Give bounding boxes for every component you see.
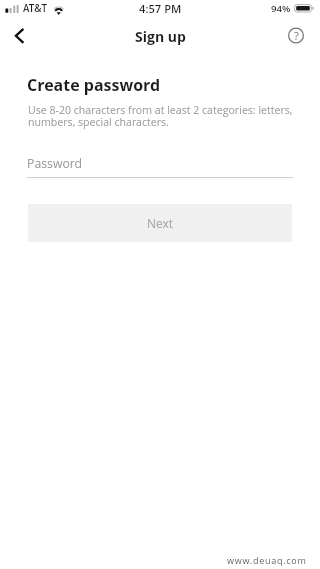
button[interactable]: Help [282,21,311,50]
staticText: Password [27,155,83,172]
staticText: www.deuaq.com [227,554,307,566]
staticText: Create password [27,74,161,96]
staticText: Sign up [135,27,186,46]
staticText: 4:57 PM [139,1,182,16]
button[interactable]: Next [28,204,292,242]
staticText: numbers, special characters. [28,115,169,129]
button[interactable]: Back [2,21,38,50]
staticText: 94% [271,2,291,15]
staticText: ? [294,28,299,43]
staticText: AT&T [23,2,48,15]
staticText: Use 8-20 characters from at least 2 cate… [28,103,293,117]
staticText: Next [147,215,174,231]
